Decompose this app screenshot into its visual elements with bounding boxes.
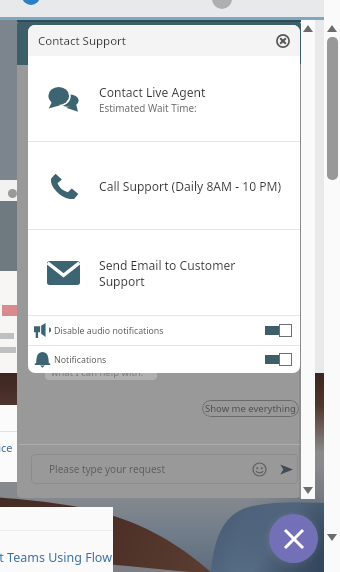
button[interactable]: Call Support (Daily 8AM - 10 PM) bbox=[28, 142, 300, 229]
staticText: ft Teams Using Flow bbox=[0, 549, 112, 566]
button[interactable]: Close chat bbox=[269, 514, 318, 563]
staticText: Estimated Wait Time: bbox=[99, 101, 197, 114]
button[interactable]: Contact Live Agent bbox=[28, 56, 300, 141]
staticText: Show me everything bbox=[205, 402, 296, 415]
staticText: rvice bbox=[0, 440, 13, 455]
staticText: Please type your request bbox=[49, 462, 166, 476]
button[interactable]: Show me everything bbox=[202, 400, 299, 417]
button[interactable]: Close bbox=[272, 30, 294, 52]
staticText: Disable audio notifications bbox=[54, 325, 164, 337]
staticText: Send Email to Customer Support bbox=[99, 257, 244, 289]
button[interactable]: Send Email to Customer Support bbox=[28, 230, 300, 315]
staticText: Contact Support bbox=[38, 33, 127, 49]
button[interactable]: Send bbox=[280, 464, 293, 475]
button[interactable]: Emoji bbox=[252, 462, 267, 477]
staticText: what I can help with. bbox=[51, 366, 144, 379]
staticText: Notifications bbox=[54, 354, 107, 366]
button[interactable]: Disable audio notifications bbox=[28, 316, 300, 345]
staticText: Contact Live Agent bbox=[99, 84, 206, 100]
button[interactable]: Please type your request bbox=[31, 454, 298, 484]
button[interactable]: Notifications bbox=[28, 346, 300, 373]
staticText: Call Support (Daily 8AM - 10 PM) bbox=[99, 178, 282, 194]
